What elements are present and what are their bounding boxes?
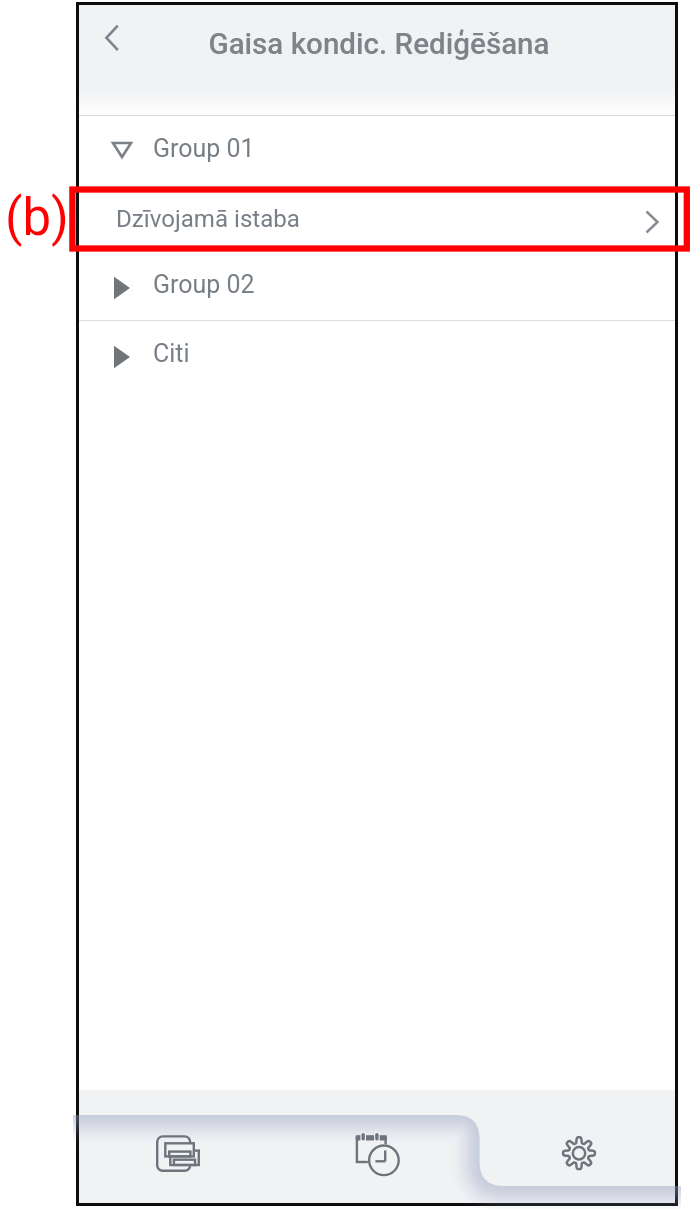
button[interactable]: Group 02 — [79, 252, 675, 320]
staticText: Group 02 — [153, 270, 255, 299]
button[interactable]: Back — [83, 5, 145, 67]
button[interactable]: Devices — [79, 1090, 277, 1203]
button[interactable]: Citi — [79, 321, 675, 389]
button[interactable]: Dzīvojamā istaba — [79, 184, 675, 252]
staticText: (b) — [5, 188, 69, 248]
staticText: Gaisa kondic. Rediģēšana — [208, 27, 550, 62]
button[interactable]: Schedule — [277, 1090, 476, 1203]
button[interactable]: Group 01 — [79, 116, 675, 184]
staticText: Group 01 — [153, 134, 255, 163]
button[interactable]: Settings — [476, 1090, 675, 1203]
staticText: Citi — [153, 339, 190, 368]
staticText: Dzīvojamā istaba — [116, 205, 300, 233]
